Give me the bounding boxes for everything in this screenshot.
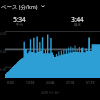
staticText: 5:34 — [13, 15, 26, 23]
staticText: 4:00 — [0, 32, 7, 36]
staticText: 最高 — [74, 23, 81, 27]
button[interactable]: 5:34 — [5, 15, 33, 27]
staticText: 5:00 — [0, 50, 7, 54]
staticText: 6:00 — [0, 68, 7, 72]
button[interactable]: ペース (分/km) — [0, 0, 100, 12]
staticText: 時間 (分:秒) — [41, 90, 59, 95]
staticText: 51:19 — [86, 80, 95, 84]
staticText: 3:44 — [71, 15, 84, 23]
staticText: 23:46 — [46, 80, 55, 84]
button[interactable]: 3:44 — [63, 15, 91, 27]
staticText: ペース (分/km) — [1, 3, 38, 10]
staticText: 平均 — [16, 23, 23, 27]
staticText: 37:32 — [66, 80, 75, 84]
staticText: 13:53 — [26, 80, 35, 84]
staticText: 0:00 — [7, 80, 14, 84]
